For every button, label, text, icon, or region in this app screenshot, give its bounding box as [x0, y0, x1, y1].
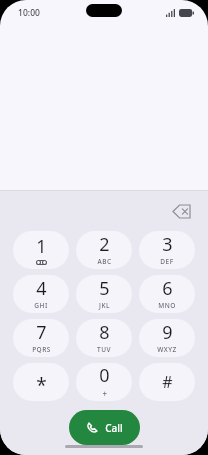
staticText: + [102, 388, 108, 399]
staticText: GHI [34, 301, 48, 310]
button[interactable]: Backspace [166, 196, 196, 226]
staticText: DEF [160, 257, 174, 266]
button[interactable]: 2 [76, 231, 132, 269]
button[interactable]: 0 [76, 363, 132, 401]
staticText: Call [105, 421, 123, 435]
button[interactable]: 4 [13, 275, 69, 313]
button[interactable]: 9 [139, 319, 195, 357]
button[interactable]: Call [69, 410, 140, 445]
staticText: WXYZ [157, 345, 177, 354]
button[interactable]: 5 [76, 275, 132, 313]
button[interactable]: 3 [139, 231, 195, 269]
staticText: TUV [97, 345, 111, 354]
staticText: ABC [97, 257, 112, 266]
staticText: 1 [36, 234, 47, 259]
staticText: 2 [99, 232, 110, 257]
button[interactable]: * [13, 363, 69, 401]
staticText: 0 [99, 363, 110, 388]
staticText: 5 [99, 276, 110, 301]
button[interactable]: 6 [139, 275, 195, 313]
staticText: 8 [99, 320, 110, 345]
staticText: 7 [36, 320, 47, 345]
staticText: 3 [162, 232, 173, 257]
staticText: 4 [36, 276, 47, 301]
button[interactable]: # [139, 363, 195, 401]
staticText: 10:00 [18, 7, 40, 19]
staticText: 9 [162, 320, 173, 345]
button[interactable]: 8 [76, 319, 132, 357]
staticText: * [36, 372, 47, 398]
button[interactable]: 7 [13, 319, 69, 357]
staticText: PQRS [32, 345, 51, 354]
staticText: MNO [158, 301, 176, 310]
staticText: 6 [162, 276, 173, 301]
staticText: # [162, 371, 173, 393]
button[interactable]: 1 [13, 231, 69, 269]
staticText: JKL [99, 301, 110, 310]
